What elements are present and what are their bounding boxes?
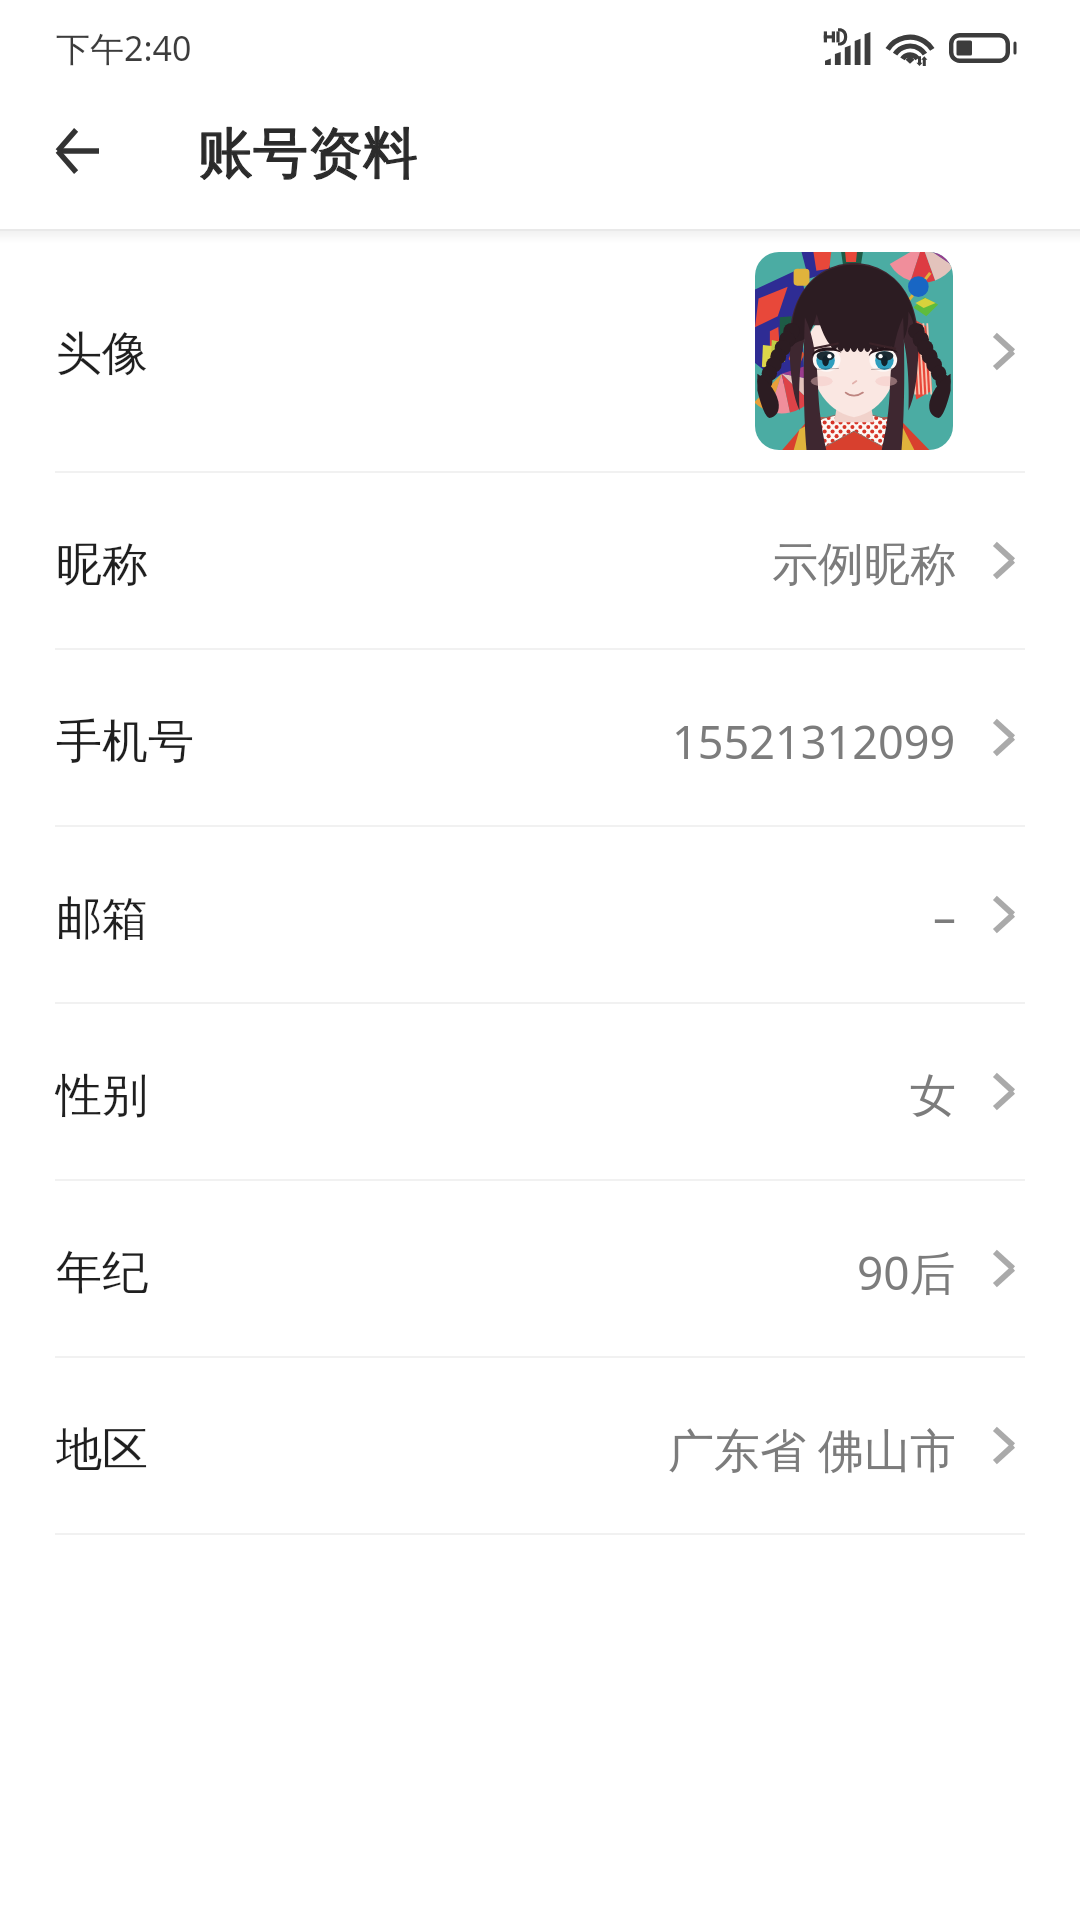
button[interactable]: 性别: [0, 1004, 1080, 1179]
staticText: 示例昵称: [772, 536, 956, 594]
staticText: 地区: [56, 1421, 148, 1479]
button[interactable]: 昵称: [0, 473, 1080, 648]
staticText: 性别: [56, 1067, 148, 1125]
staticText: 下午2:40: [56, 25, 192, 71]
button[interactable]: 手机号: [0, 650, 1080, 825]
staticText: 账号资料: [198, 119, 418, 188]
staticText: –: [933, 884, 956, 947]
staticText: 90后: [857, 1241, 956, 1304]
staticText: 账号资料: [198, 119, 418, 188]
button[interactable]: 年纪: [0, 1181, 1080, 1356]
staticText: 手机号: [56, 713, 194, 771]
button[interactable]: Back: [29, 103, 125, 199]
staticText: 广东省 佛山市: [668, 1418, 956, 1481]
button[interactable]: 地区: [0, 1358, 1080, 1533]
staticText: 头像: [56, 325, 148, 383]
button[interactable]: 邮箱: [0, 827, 1080, 1002]
staticText: 年纪: [56, 1244, 148, 1302]
button[interactable]: 头像: [0, 231, 1080, 471]
staticText: 15521312099: [672, 711, 956, 772]
staticText: 邮箱: [56, 890, 148, 948]
staticText: 昵称: [56, 536, 148, 594]
staticText: 女: [910, 1067, 956, 1125]
